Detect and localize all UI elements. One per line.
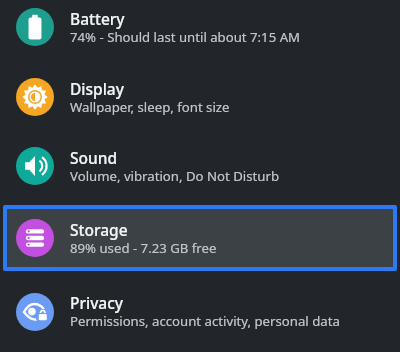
staticText: Battery [70, 8, 125, 29]
button[interactable]: Privacy [0, 280, 400, 352]
staticText: Display [70, 78, 124, 99]
staticText: Storage [70, 219, 128, 240]
button[interactable]: Sound [0, 136, 400, 204]
button[interactable]: Storage [3, 205, 397, 271]
button[interactable]: Display [0, 66, 400, 136]
staticText: Permissions, account activity, personal … [70, 312, 340, 330]
button[interactable]: Battery [0, 0, 400, 66]
staticText: Privacy [70, 292, 124, 313]
staticText: 89% used - 7.23 GB free [70, 239, 217, 257]
staticText: Wallpaper, sleep, font size [70, 98, 230, 116]
other: Settings list [0, 0, 400, 352]
staticText: 74% - Should last until about 7:15 AM [70, 28, 301, 46]
staticText: Sound [70, 147, 118, 168]
staticText: Volume, vibration, Do Not Disturb [70, 167, 279, 185]
